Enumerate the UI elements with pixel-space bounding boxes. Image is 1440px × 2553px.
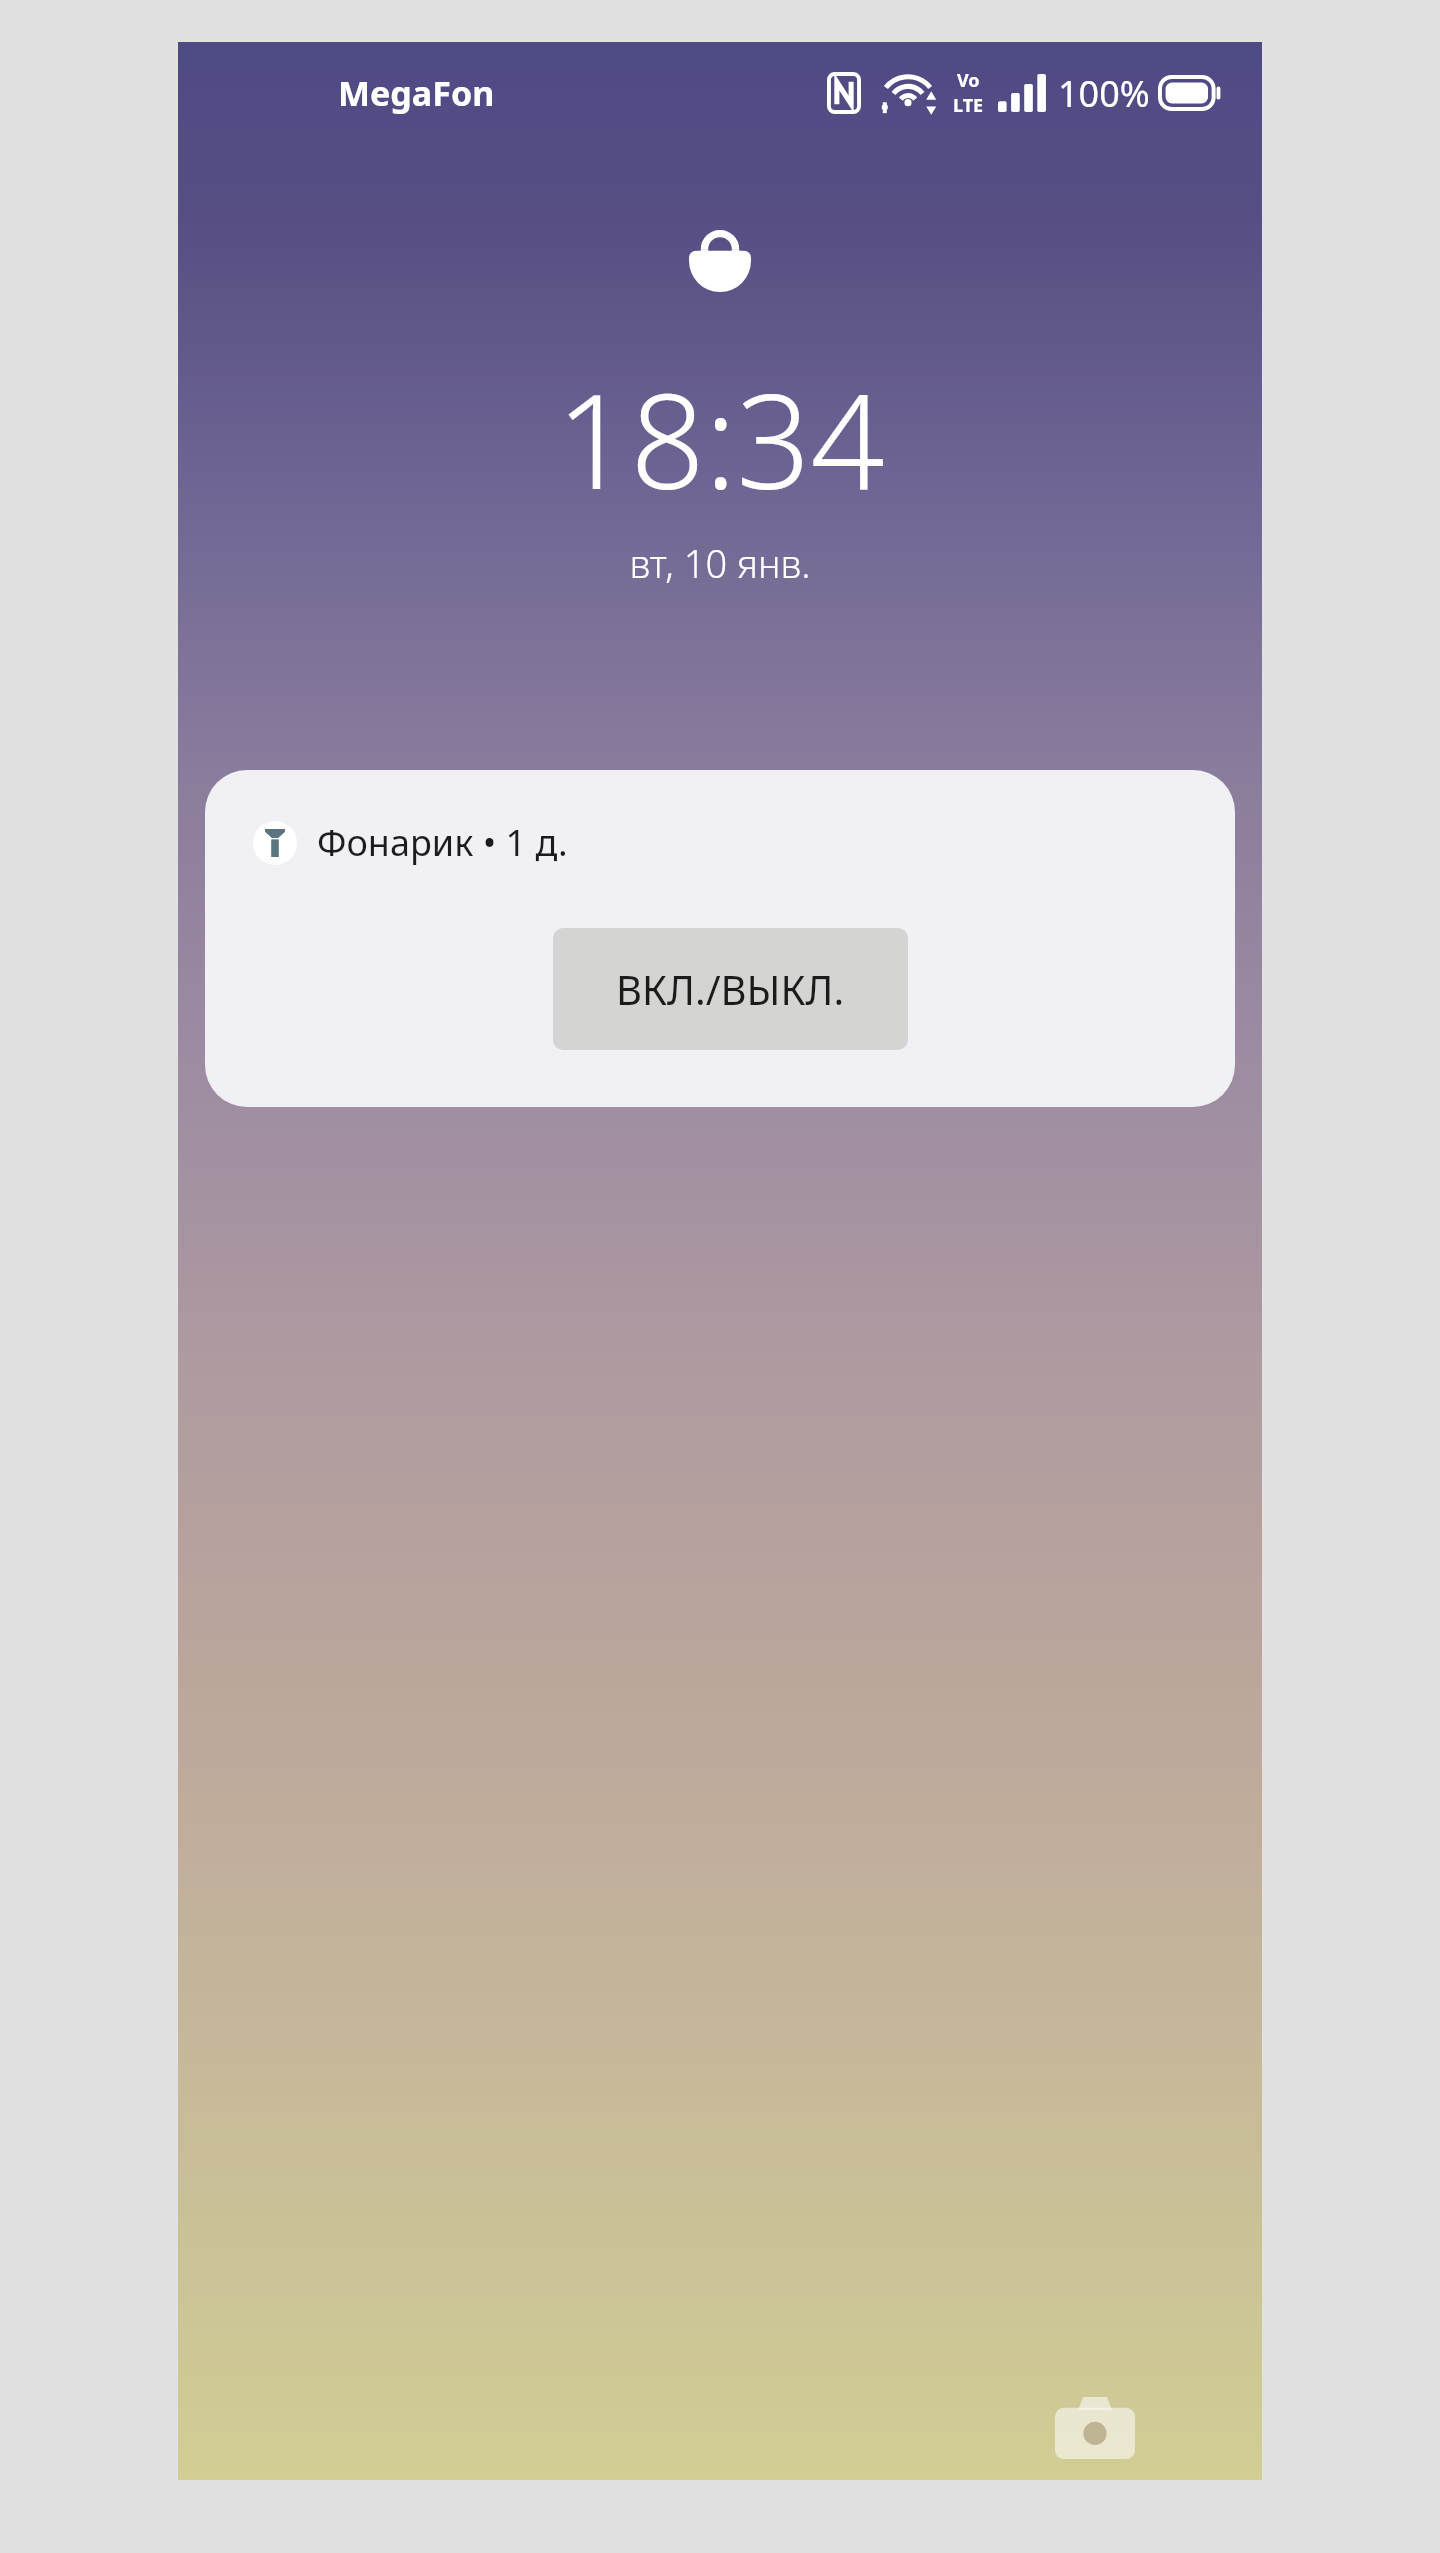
staticText: 100% (1058, 69, 1150, 118)
staticText: 18:34 (556, 350, 885, 527)
staticText: ВКЛ./ВЫКЛ. (616, 962, 845, 1016)
button[interactable]: Camera (1040, 2372, 1150, 2482)
staticText: Фонарик • 1 д. (317, 818, 568, 867)
staticText: вт, 10 янв. (629, 537, 811, 589)
staticText: MegaFon (338, 70, 495, 116)
button[interactable]: ВКЛ./ВЫКЛ. (553, 928, 908, 1050)
staticText: LTE (953, 93, 984, 118)
staticText: Vo (957, 68, 980, 93)
button[interactable]: Фонарик • 1 д. (205, 770, 1235, 1107)
